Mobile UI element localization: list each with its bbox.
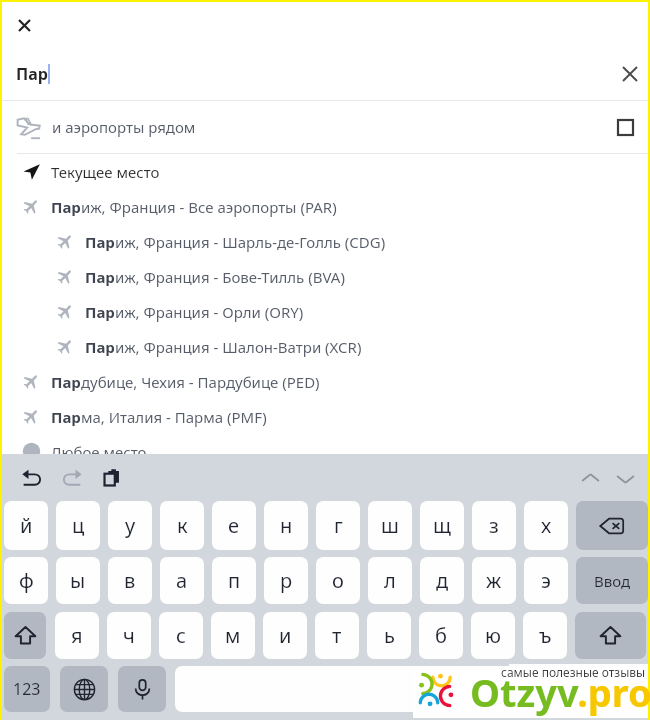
button[interactable]: ч	[107, 612, 151, 659]
button[interactable]: т	[315, 612, 359, 659]
staticText: в	[124, 567, 136, 594]
button[interactable]: Space	[175, 666, 598, 712]
staticText: л	[384, 567, 396, 594]
staticText: Текущее место	[51, 162, 160, 182]
staticText: ь	[384, 622, 395, 649]
staticText: о	[332, 567, 344, 594]
staticText: ж	[486, 567, 502, 594]
staticText: Париж, Франция - Все аэропорты (PAR)	[51, 197, 337, 217]
button[interactable]: я	[55, 612, 99, 659]
staticText: э	[541, 567, 551, 594]
staticText: р	[280, 567, 293, 594]
staticText: я	[71, 622, 83, 649]
button[interactable]: э	[524, 557, 568, 604]
button[interactable]: Previous suggestion	[574, 462, 606, 494]
button[interactable]: н	[264, 501, 308, 550]
button[interactable]: ф	[4, 557, 48, 604]
staticText: Otzyv.pro	[470, 666, 650, 718]
button[interactable]: Nearby airports checkbox	[617, 119, 634, 136]
staticText: Любое место	[51, 442, 147, 462]
button[interactable]: у	[108, 501, 152, 550]
button[interactable]: ъ	[523, 612, 567, 659]
button[interactable]: ш	[368, 501, 412, 550]
button[interactable]: й	[4, 501, 48, 550]
staticText: с	[176, 622, 186, 649]
button[interactable]: ю	[471, 612, 515, 659]
button[interactable]: с	[159, 612, 203, 659]
button[interactable]: Paste	[95, 460, 129, 494]
staticText: Парма, Италия - Парма (PMF)	[51, 407, 267, 427]
staticText: ы	[70, 567, 86, 594]
staticText: б	[435, 622, 447, 649]
button[interactable]: Пардубице, Чехия - Пардубице (PED)	[2, 364, 648, 399]
button[interactable]: Shift	[4, 612, 46, 659]
staticText: е	[228, 512, 240, 539]
staticText: п	[228, 567, 241, 594]
staticText: Ввод	[594, 571, 631, 591]
button[interactable]: з	[472, 501, 516, 550]
staticText: ш	[381, 512, 399, 539]
staticText: Париж, Франция - Шалон-Ватри (XCR)	[85, 337, 362, 357]
button[interactable]: Voice input	[118, 666, 166, 712]
button[interactable]: е	[212, 501, 256, 550]
staticText: у	[125, 512, 136, 539]
button[interactable]: Clear text	[613, 57, 647, 91]
button[interactable]: Undo	[15, 460, 49, 494]
staticText: м	[225, 622, 241, 649]
button[interactable]: Next suggestion	[609, 462, 641, 494]
staticText: н	[280, 512, 293, 539]
staticText: г	[334, 512, 343, 539]
button[interactable]: г	[316, 501, 360, 550]
button[interactable]: Change keyboard language	[60, 666, 108, 712]
button[interactable]: ц	[56, 501, 100, 550]
button[interactable]: Парма, Италия - Парма (PMF)	[2, 399, 648, 434]
button[interactable]: д	[420, 557, 464, 604]
button[interactable]: Париж, Франция - Орли (ORY)	[2, 294, 648, 329]
staticText: ц	[72, 512, 85, 539]
button[interactable]: м	[211, 612, 255, 659]
staticText: Париж, Франция - Бове-Тилль (BVA)	[85, 267, 345, 287]
button[interactable]: щ	[420, 501, 464, 550]
button[interactable]: Париж, Франция - Все аэропорты (PAR)	[2, 189, 648, 224]
button[interactable]: п	[212, 557, 256, 604]
staticText: ю	[485, 622, 501, 649]
button[interactable]: Париж, Франция - Шарль-де-Голль (CDG)	[2, 224, 648, 259]
staticText: Париж, Франция - Шарль-де-Голль (CDG)	[85, 232, 386, 252]
button[interactable]: Redo	[55, 460, 89, 494]
staticText: и аэропорты рядом	[52, 117, 196, 137]
button[interactable]: и	[263, 612, 307, 659]
button[interactable]: 123	[4, 666, 50, 712]
button[interactable]: а	[160, 557, 204, 604]
button[interactable]: ы	[56, 557, 100, 604]
staticText: щ	[433, 512, 451, 539]
button[interactable]: р	[264, 557, 308, 604]
staticText: х	[541, 512, 552, 539]
staticText: ч	[123, 622, 135, 649]
button[interactable]: к	[160, 501, 204, 550]
staticText: Пар	[16, 63, 48, 85]
button[interactable]: Ввод	[576, 557, 648, 604]
button[interactable]: Текущее место	[2, 154, 648, 189]
button[interactable]: Backspace	[576, 501, 648, 550]
button[interactable]: Shift	[575, 612, 646, 659]
button[interactable]: Close	[7, 8, 41, 42]
staticText: и	[279, 622, 292, 649]
button[interactable]: х	[524, 501, 568, 550]
button[interactable]: ж	[472, 557, 516, 604]
staticText: Пардубице, Чехия - Пардубице (PED)	[51, 372, 320, 392]
button[interactable]: в	[108, 557, 152, 604]
button[interactable]: ь	[367, 612, 411, 659]
staticText: з	[489, 512, 499, 539]
button[interactable]: б	[419, 612, 463, 659]
staticText: ъ	[539, 622, 552, 649]
staticText: д	[436, 567, 449, 594]
button[interactable]: Париж, Франция - Шалон-Ватри (XCR)	[2, 329, 648, 364]
button[interactable]: Париж, Франция - Бове-Тилль (BVA)	[2, 259, 648, 294]
staticText: к	[177, 512, 188, 539]
button[interactable]: и аэропорты рядом	[2, 101, 648, 153]
staticText: т	[332, 622, 342, 649]
staticText: ф	[19, 567, 34, 594]
button[interactable]: о	[316, 557, 360, 604]
button[interactable]: Любое место	[2, 434, 648, 469]
button[interactable]: л	[368, 557, 412, 604]
